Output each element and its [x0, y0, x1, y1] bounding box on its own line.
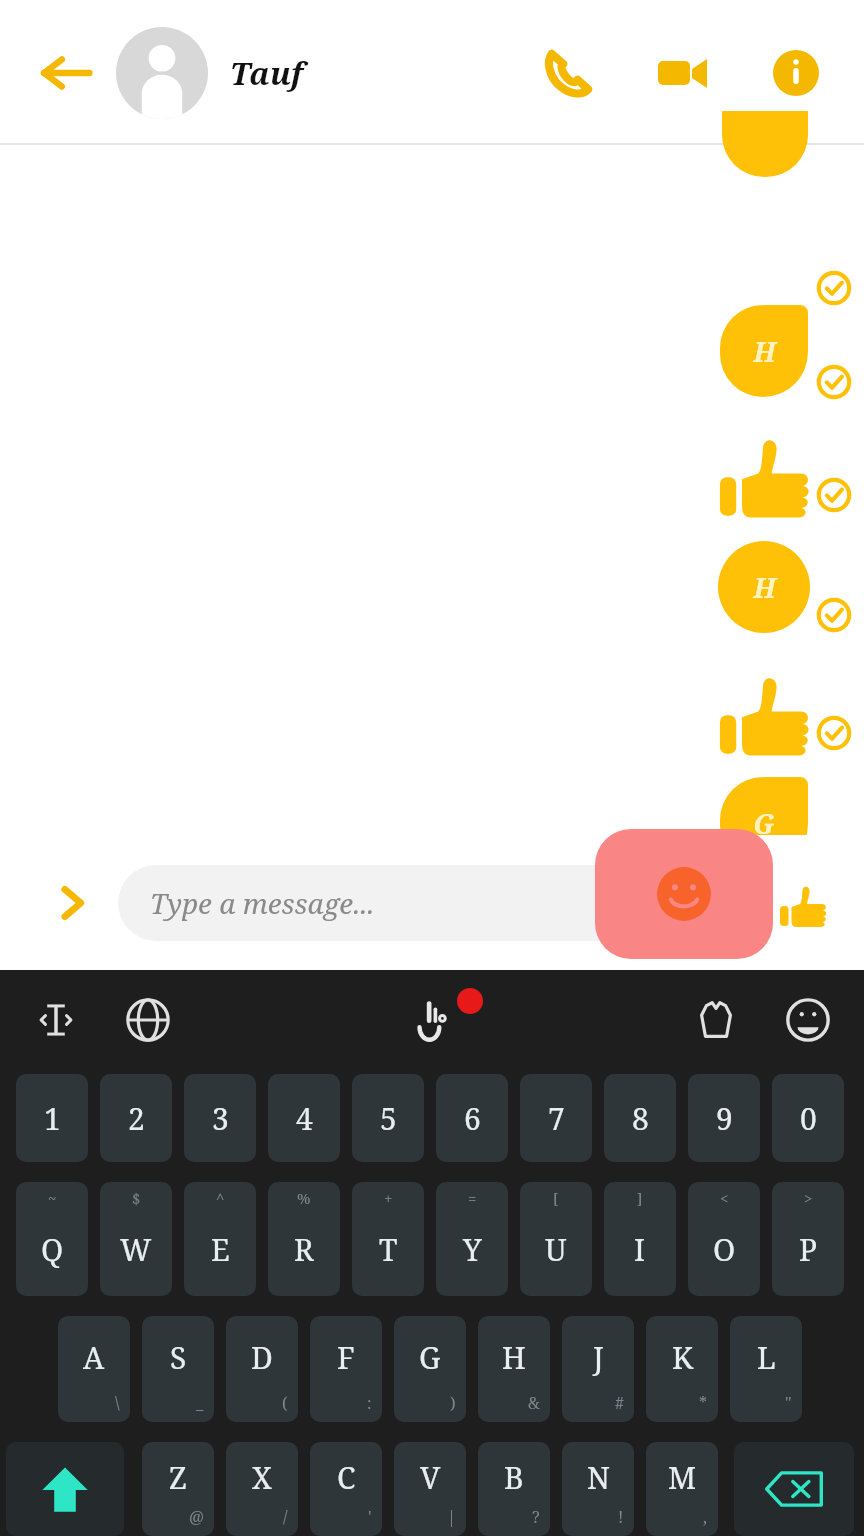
staticText: _ — [196, 1392, 204, 1414]
staticText: * — [699, 1392, 708, 1414]
button[interactable]: Backspace — [734, 1442, 854, 1536]
staticText: A — [83, 1337, 105, 1378]
staticText: ' — [368, 1506, 372, 1528]
staticText: # — [615, 1392, 624, 1414]
staticText: C — [337, 1457, 356, 1498]
staticText: 9 — [716, 1098, 733, 1139]
button[interactable]: Type a message... — [118, 865, 680, 941]
staticText: 7 — [548, 1098, 565, 1139]
button[interactable]: % — [268, 1182, 340, 1296]
staticText: Tauf — [230, 52, 304, 94]
button[interactable]: Change language — [118, 990, 178, 1050]
staticText: 6 — [464, 1098, 481, 1139]
button[interactable]: Emoji keyboard — [778, 990, 838, 1050]
staticText: K — [672, 1337, 693, 1378]
button[interactable]: H — [478, 1316, 550, 1422]
staticText: = — [468, 1188, 477, 1208]
staticText: F — [337, 1337, 355, 1378]
button[interactable]: Send thumbs up — [776, 881, 832, 937]
button[interactable]: 1 — [16, 1074, 88, 1162]
button[interactable]: < — [688, 1182, 760, 1296]
button[interactable]: L — [730, 1316, 802, 1422]
button[interactable]: Info — [758, 35, 834, 111]
button[interactable]: V — [394, 1442, 466, 1536]
button[interactable]: $ — [100, 1182, 172, 1296]
button[interactable]: Thumbs up message — [718, 435, 814, 531]
button[interactable]: 7 — [520, 1074, 592, 1162]
button[interactable]: K — [646, 1316, 718, 1422]
staticText: % — [297, 1188, 311, 1208]
button[interactable]: = — [436, 1182, 508, 1296]
button[interactable]: S — [142, 1316, 214, 1422]
staticText: E — [211, 1229, 230, 1270]
staticText: 1 — [44, 1098, 61, 1139]
button[interactable]: 8 — [604, 1074, 676, 1162]
button[interactable]: Shift — [6, 1442, 124, 1536]
staticText: ? — [532, 1506, 540, 1528]
button[interactable]: 0 — [772, 1074, 844, 1162]
staticText: Q — [41, 1229, 64, 1270]
button[interactable]: 5 — [352, 1074, 424, 1162]
staticText: > — [804, 1188, 813, 1208]
staticText: ^ — [216, 1188, 225, 1208]
button[interactable]: F — [310, 1316, 382, 1422]
staticText: N — [587, 1457, 610, 1498]
staticText: & — [528, 1392, 540, 1414]
button[interactable]: Back — [30, 37, 102, 109]
staticText: [ — [553, 1188, 559, 1208]
button[interactable]: Cursor control — [28, 992, 84, 1048]
staticText: ~ — [48, 1188, 57, 1208]
button[interactable]: [ — [520, 1182, 592, 1296]
staticText: 8 — [632, 1098, 649, 1139]
button[interactable]: 9 — [688, 1074, 760, 1162]
button[interactable]: M — [646, 1442, 718, 1536]
button[interactable]: J — [562, 1316, 634, 1422]
button[interactable]: Voice and handwriting — [400, 988, 464, 1052]
staticText: 2 — [128, 1098, 145, 1139]
staticText: ( — [282, 1392, 288, 1414]
button[interactable]: 6 — [436, 1074, 508, 1162]
button[interactable]: 3 — [184, 1074, 256, 1162]
staticText: Y — [463, 1229, 482, 1270]
staticText: X — [252, 1457, 272, 1498]
button[interactable]: Emoji — [595, 829, 773, 959]
staticText: D — [251, 1337, 273, 1378]
staticText: ] — [637, 1188, 643, 1208]
button[interactable]: ^ — [184, 1182, 256, 1296]
staticText: V — [420, 1457, 441, 1498]
staticText: \ — [115, 1392, 120, 1414]
button[interactable]: Voice call — [530, 35, 606, 111]
staticText: < — [720, 1188, 729, 1208]
staticText: J — [593, 1337, 604, 1378]
button[interactable]: Expand actions — [44, 875, 100, 931]
button[interactable]: Hello Brother — [564, 878, 825, 962]
button[interactable]: D — [226, 1316, 298, 1422]
button[interactable] — [722, 111, 808, 177]
button[interactable]: H — [718, 541, 810, 633]
button[interactable]: ] — [604, 1182, 676, 1296]
staticText: L — [757, 1337, 776, 1378]
button[interactable]: A — [58, 1316, 130, 1422]
button[interactable]: N — [562, 1442, 634, 1536]
button[interactable]: Themes — [686, 990, 746, 1050]
staticText: $ — [132, 1188, 141, 1208]
button[interactable]: + — [352, 1182, 424, 1296]
button[interactable]: 2 — [100, 1074, 172, 1162]
button[interactable]: B — [478, 1442, 550, 1536]
staticText: G — [753, 805, 775, 842]
button[interactable]: > — [772, 1182, 844, 1296]
button[interactable]: Thumbs up message — [718, 673, 814, 769]
staticText: 5 — [380, 1098, 397, 1139]
button[interactable]: ~ — [16, 1182, 88, 1296]
button[interactable]: H — [720, 305, 808, 397]
button[interactable]: Profile picture — [116, 27, 208, 119]
staticText: P — [799, 1229, 818, 1270]
button[interactable]: C — [310, 1442, 382, 1536]
button[interactable]: Z — [142, 1442, 214, 1536]
button[interactable]: Video call — [644, 35, 720, 111]
button[interactable]: X — [226, 1442, 298, 1536]
button[interactable]: 4 — [268, 1074, 340, 1162]
staticText: ! — [618, 1506, 624, 1528]
button[interactable]: G — [394, 1316, 466, 1422]
button[interactable]: G — [720, 777, 808, 869]
